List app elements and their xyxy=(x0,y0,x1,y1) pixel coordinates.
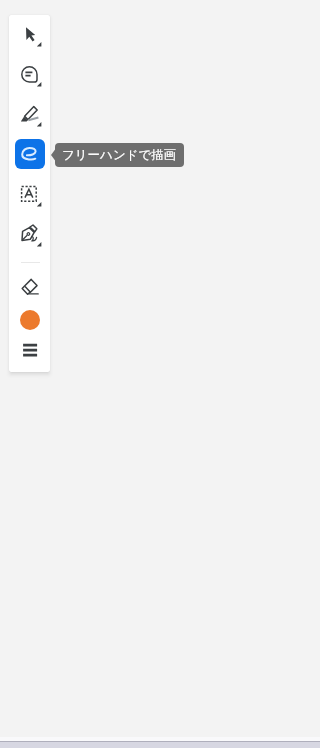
button[interactable]: Eraser xyxy=(9,268,50,306)
button[interactable]: Text box xyxy=(9,176,50,214)
button[interactable]: Select xyxy=(9,16,50,54)
button[interactable]: Colour xyxy=(9,301,50,339)
button[interactable]: Freehand draw xyxy=(9,135,50,173)
button[interactable]: Comment xyxy=(9,56,50,94)
button[interactable]: Highlight xyxy=(9,96,50,134)
staticText: フリーハンドで描画 xyxy=(62,147,177,163)
button[interactable]: Signature xyxy=(9,216,50,254)
button[interactable]: More options xyxy=(9,331,50,369)
